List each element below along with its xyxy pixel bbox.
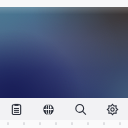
button[interactable]: Explore [32,98,64,120]
button[interactable]: Documents [0,98,32,120]
button[interactable]: Search [64,98,96,120]
button[interactable]: Settings [96,98,128,120]
